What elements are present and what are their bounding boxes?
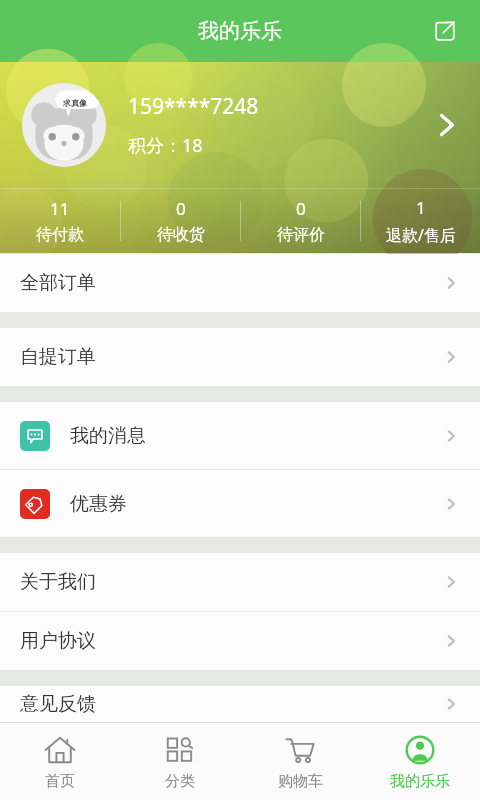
button[interactable]: 首页 <box>0 723 120 800</box>
staticText: 我的乐乐 <box>390 772 450 791</box>
staticText: 我的消息 <box>70 424 442 448</box>
staticText: 全部订单 <box>20 271 442 295</box>
button[interactable]: 购物车 <box>240 723 360 800</box>
button[interactable]: 0 <box>121 189 240 253</box>
button[interactable]: 意见反馈 <box>0 686 480 722</box>
button[interactable]: 分类 <box>120 723 240 800</box>
staticText: 待收货 <box>157 225 205 245</box>
staticText: 0 <box>176 197 186 220</box>
staticText: 11 <box>50 197 70 220</box>
button[interactable]: 我的乐乐 <box>360 723 480 800</box>
staticText: 关于我们 <box>20 570 442 594</box>
button[interactable]: Share <box>424 10 466 52</box>
staticText: 1 <box>416 196 426 219</box>
button[interactable]: 用户协议 <box>0 612 480 670</box>
button[interactable]: 0 <box>241 189 360 253</box>
staticText: 我的乐乐 <box>198 18 282 44</box>
staticText: 0 <box>296 197 306 220</box>
staticText: 意见反馈 <box>20 692 442 716</box>
staticText: 优惠券 <box>70 492 442 516</box>
button[interactable]: 自提订单 <box>0 328 480 386</box>
staticText: 用户协议 <box>20 629 442 653</box>
staticText: 退款/售后 <box>386 224 456 246</box>
staticText: 积分：18 <box>128 133 203 158</box>
staticText: 待评价 <box>277 225 325 245</box>
button[interactable]: 全部订单 <box>0 254 480 312</box>
staticText: 求真像 <box>63 98 87 108</box>
staticText: 分类 <box>165 772 195 791</box>
button[interactable]: 11 <box>0 189 120 253</box>
staticText: 159****7248 <box>128 92 259 121</box>
staticText: 待付款 <box>36 225 84 245</box>
button[interactable]: 关于我们 <box>0 553 480 611</box>
staticText: 首页 <box>45 772 75 791</box>
button[interactable]: 求真像 <box>0 62 480 188</box>
staticText: 购物车 <box>278 772 323 791</box>
button[interactable]: 1 <box>361 189 480 253</box>
button[interactable]: 我的消息 <box>0 402 480 469</box>
button[interactable]: 优惠券 <box>0 470 480 537</box>
staticText: 自提订单 <box>20 345 442 369</box>
